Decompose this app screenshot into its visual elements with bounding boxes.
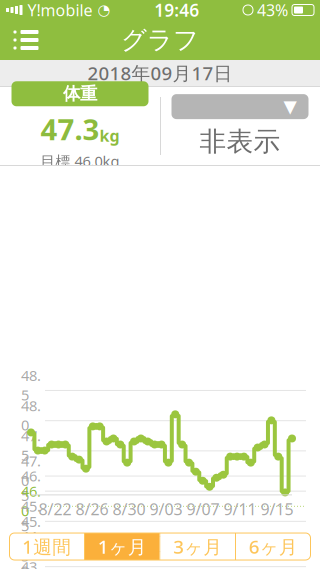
- staticText: 45.0: [21, 511, 41, 550]
- staticText: 46.5: [21, 466, 41, 505]
- staticText: 9/15: [260, 498, 293, 520]
- staticText: 47.0: [21, 451, 41, 490]
- staticText: 目標 46.0kg: [40, 151, 119, 171]
- staticText: 体重: [63, 83, 97, 104]
- staticText: 44.5: [21, 527, 41, 566]
- staticText: ◔: [97, 2, 110, 18]
- button[interactable]: 1週間: [9, 533, 84, 560]
- staticText: Y!mobile: [27, 0, 92, 21]
- staticText: 3ヶ月: [173, 534, 222, 559]
- staticText: 48.5: [21, 365, 41, 404]
- staticText: 非表示: [199, 125, 280, 158]
- staticText: kg: [99, 125, 119, 146]
- staticText: 45.5: [21, 496, 41, 535]
- staticText: 44.0: [21, 542, 41, 569]
- staticText: 2018年09月17日: [87, 61, 232, 85]
- staticText: グラフ: [121, 24, 199, 55]
- button[interactable]: メニュー: [4, 20, 48, 60]
- staticText: 9/07: [186, 498, 219, 520]
- staticText: 1ヶ月: [98, 534, 147, 559]
- staticText: 9/03: [149, 498, 182, 520]
- button[interactable]: 3ヶ月: [160, 533, 235, 560]
- staticText: 43%: [257, 0, 288, 21]
- staticText: 46.0: [21, 481, 41, 520]
- button[interactable]: 6ヶ月: [236, 533, 310, 560]
- staticText: 47.5: [21, 426, 41, 465]
- staticText: ▼: [283, 97, 296, 116]
- staticText: 8/22: [38, 498, 71, 520]
- staticText: 1週間: [22, 534, 71, 559]
- staticText: 9/11: [223, 498, 256, 520]
- staticText: 19:46: [154, 0, 199, 21]
- staticText: 43.5: [21, 557, 41, 569]
- staticText: 8/26: [75, 498, 108, 520]
- button[interactable]: 1ヶ月: [85, 533, 159, 560]
- staticText: 47.3: [40, 109, 99, 148]
- staticText: 6ヶ月: [249, 534, 298, 559]
- button[interactable]: 体重: [11, 81, 148, 106]
- button[interactable]: 表示項目の選択: [171, 94, 308, 119]
- staticText: 8/30: [112, 498, 145, 520]
- staticText: 48.0: [21, 396, 41, 435]
